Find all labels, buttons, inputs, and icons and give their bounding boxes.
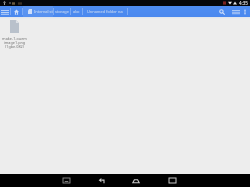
button[interactable]: Unnamed folder na [83,6,127,17]
button[interactable]: Home [11,6,22,17]
button[interactable]: abc [71,6,82,17]
button[interactable]: Home [129,174,143,187]
button[interactable]: Search [216,6,227,17]
staticText: make-1-ouem image1.png (1gbe.082) [2,36,27,50]
button[interactable]: More options [242,6,248,17]
button[interactable]: Open navigation drawer [0,6,10,17]
button[interactable]: Change view [230,6,241,17]
button[interactable]: Internal sto [23,6,53,17]
staticText: Internal sto [34,9,53,14]
button[interactable]: Show keyboard [59,174,73,187]
staticText: abc [73,9,80,14]
staticText: storage [55,9,69,14]
button[interactable]: storage [54,6,70,17]
button[interactable]: Back [95,174,109,187]
staticText: 4:35 [239,0,248,6]
button[interactable]: Recent apps [165,174,179,187]
staticText: Unnamed folder na [87,9,123,14]
button[interactable]: make-1-ouem image1.png (1gbe.082) [0,20,29,50]
